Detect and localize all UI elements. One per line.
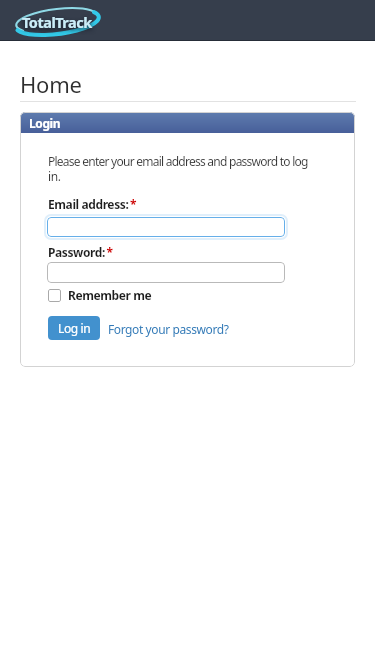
button[interactable]: Remember me [48, 287, 152, 303]
button[interactable] [47, 262, 285, 283]
staticText: Remember me [68, 287, 152, 303]
staticText: Please enter your email address and pass… [48, 153, 308, 169]
button[interactable]: Log in [48, 316, 100, 340]
staticText: in. [48, 168, 61, 184]
staticText: Log in [58, 320, 91, 336]
staticText: TotalTrack [22, 12, 92, 32]
button[interactable]: Forgot your password? [108, 321, 229, 337]
button[interactable]: TotalTrack [14, 3, 100, 39]
button[interactable] [47, 217, 285, 237]
staticText: Email address: * [48, 196, 137, 212]
staticText: Home [20, 69, 82, 99]
staticText: Password: * [48, 244, 113, 260]
staticText: Forgot your password? [108, 321, 229, 337]
staticText: Login [29, 115, 61, 131]
